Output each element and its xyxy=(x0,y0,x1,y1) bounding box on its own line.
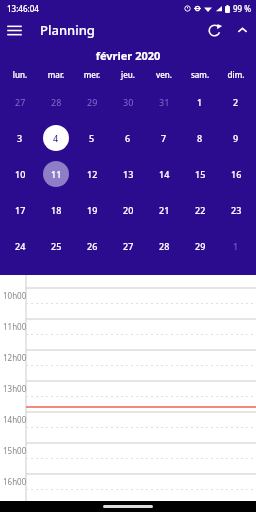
staticText: 15 xyxy=(195,168,206,180)
staticText: 28 xyxy=(159,240,170,252)
staticText: février 2020 xyxy=(0,48,256,63)
staticText: 27 xyxy=(15,96,26,108)
button[interactable]: 17 xyxy=(2,192,38,228)
staticText: lun. xyxy=(2,69,38,80)
button[interactable]: Refresh xyxy=(200,16,228,44)
button[interactable]: 27 xyxy=(2,84,38,120)
staticText: 12h00 xyxy=(3,352,27,363)
staticText: 1 xyxy=(233,240,239,252)
button[interactable]: 11 xyxy=(38,156,74,192)
staticText: 17 xyxy=(15,204,26,216)
button[interactable]: 4 xyxy=(38,120,74,156)
staticText: 9 xyxy=(233,132,239,144)
staticText: 28 xyxy=(51,96,62,108)
staticText: 16h00 xyxy=(3,476,27,487)
button[interactable]: 9 xyxy=(218,120,254,156)
button[interactable]: 28 xyxy=(38,84,74,120)
staticText: 2 xyxy=(233,96,239,108)
button[interactable]: 21 xyxy=(146,192,182,228)
button[interactable]: 27 xyxy=(110,228,146,264)
staticText: 6 xyxy=(125,132,131,144)
staticText: 15h00 xyxy=(3,445,27,456)
button[interactable]: 6 xyxy=(110,120,146,156)
staticText: 19 xyxy=(87,204,98,216)
button[interactable]: 30 xyxy=(110,84,146,120)
button[interactable]: 2 xyxy=(218,84,254,120)
staticText: 11h00 xyxy=(3,321,27,332)
staticText: mar. xyxy=(38,69,74,80)
staticText: 31 xyxy=(159,96,170,108)
button[interactable]: 20 xyxy=(110,192,146,228)
button[interactable]: 18 xyxy=(38,192,74,228)
staticText: 30 xyxy=(123,96,134,108)
button[interactable]: 24 xyxy=(2,228,38,264)
staticText: 13h00 xyxy=(3,383,27,394)
button[interactable]: 13 xyxy=(110,156,146,192)
staticText: 3 xyxy=(17,132,23,144)
button[interactable]: 7 xyxy=(146,120,182,156)
button[interactable]: 29 xyxy=(182,228,218,264)
staticText: 16 xyxy=(231,168,242,180)
staticText: 20 xyxy=(123,204,134,216)
button[interactable]: 14 xyxy=(146,156,182,192)
staticText: 25 xyxy=(51,240,62,252)
staticText: 18 xyxy=(51,204,62,216)
button[interactable]: Collapse calendar xyxy=(228,16,256,44)
button[interactable]: 22 xyxy=(182,192,218,228)
button[interactable]: 23 xyxy=(218,192,254,228)
staticText: 10h00 xyxy=(3,290,27,301)
staticText: 99 % xyxy=(233,3,252,14)
button[interactable]: 5 xyxy=(74,120,110,156)
button[interactable]: 26 xyxy=(74,228,110,264)
staticText: 8 xyxy=(197,132,203,144)
button[interactable]: 3 xyxy=(2,120,38,156)
button[interactable]: 1 xyxy=(218,228,254,264)
staticText: Planning xyxy=(40,21,95,39)
button[interactable]: 15 xyxy=(182,156,218,192)
button[interactable]: 16 xyxy=(218,156,254,192)
staticText: 14h00 xyxy=(3,414,27,425)
staticText: 13:46:04 xyxy=(7,3,39,14)
staticText: 14 xyxy=(159,168,170,180)
staticText: 10 xyxy=(15,168,26,180)
staticText: 27 xyxy=(123,240,134,252)
staticText: 29 xyxy=(195,240,206,252)
staticText: 21 xyxy=(159,204,170,216)
button[interactable]: 28 xyxy=(146,228,182,264)
button[interactable]: 29 xyxy=(74,84,110,120)
button[interactable]: 19 xyxy=(74,192,110,228)
staticText: dim. xyxy=(218,69,254,80)
button[interactable]: Open navigation menu xyxy=(0,16,28,44)
button[interactable]: 10h00 xyxy=(0,275,256,501)
staticText: 5 xyxy=(89,132,95,144)
staticText: 29 xyxy=(87,96,98,108)
button[interactable]: 10 xyxy=(2,156,38,192)
button[interactable]: 31 xyxy=(146,84,182,120)
staticText: 13 xyxy=(123,168,134,180)
staticText: 24 xyxy=(15,240,26,252)
staticText: 12 xyxy=(87,168,98,180)
button[interactable]: 12 xyxy=(74,156,110,192)
staticText: mer. xyxy=(74,69,110,80)
staticText: 23 xyxy=(231,204,242,216)
staticText: 1 xyxy=(197,96,203,108)
staticText: 11 xyxy=(51,168,62,180)
staticText: 4 xyxy=(53,132,59,144)
staticText: sam. xyxy=(182,69,218,80)
button[interactable]: 8 xyxy=(182,120,218,156)
staticText: jeu. xyxy=(110,69,146,80)
staticText: 22 xyxy=(195,204,206,216)
staticText: 26 xyxy=(87,240,98,252)
button[interactable]: 25 xyxy=(38,228,74,264)
staticText: 7 xyxy=(161,132,167,144)
button[interactable]: 1 xyxy=(182,84,218,120)
staticText: ven. xyxy=(146,69,182,80)
